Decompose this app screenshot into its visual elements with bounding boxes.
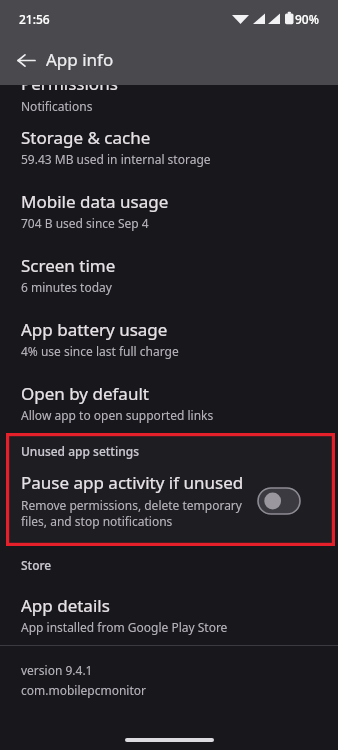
button[interactable]: App details	[0, 573, 338, 645]
staticText: Unused app settings	[21, 443, 139, 459]
staticText: 704 B used since Sep 4	[21, 215, 149, 231]
staticText: App info	[46, 48, 114, 71]
staticText: 90%	[295, 11, 319, 27]
staticText: Allow app to open supported links	[21, 407, 214, 423]
staticText: Notifications	[21, 98, 93, 114]
staticText: Permissions	[21, 72, 118, 95]
button[interactable]: Pause app activity if unused	[6, 471, 335, 541]
staticText: Storage & cache	[21, 126, 151, 149]
button[interactable]: Pause app activity if unused toggle	[257, 487, 301, 515]
staticText: Pause app activity if unused	[21, 471, 244, 494]
staticText: Store	[21, 557, 52, 573]
staticText: 4% use since last full charge	[21, 343, 179, 359]
staticText: Remove permissions, delete temporary fil…	[21, 497, 269, 529]
button[interactable]: Storage & cache	[0, 113, 338, 177]
button[interactable]: Permissions	[0, 0, 338, 113]
staticText: com.mobilepcmonitor	[21, 682, 146, 698]
button[interactable]: App battery usage	[0, 305, 338, 369]
staticText: version 9.4.1	[21, 662, 93, 678]
staticText: App battery usage	[21, 318, 168, 341]
staticText: 6 minutes today	[21, 279, 112, 295]
staticText: App details	[21, 594, 110, 617]
staticText: Screen time	[21, 254, 116, 277]
staticText: 21:56	[19, 11, 50, 27]
button[interactable]: Back	[9, 43, 43, 77]
button[interactable]: Open by default	[0, 369, 338, 433]
staticText: Mobile data usage	[21, 190, 169, 213]
staticText: App installed from Google Play Store	[21, 619, 228, 635]
staticText: 59.43 MB used in internal storage	[21, 151, 211, 167]
staticText: Open by default	[21, 382, 149, 405]
button[interactable]: Screen time	[0, 241, 338, 305]
button[interactable]: Mobile data usage	[0, 177, 338, 241]
